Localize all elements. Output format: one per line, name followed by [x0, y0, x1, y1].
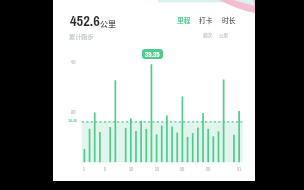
staticText: 1: [79, 166, 89, 173]
staticText: 452.6: [70, 11, 100, 31]
button[interactable]: 39.35: [142, 49, 163, 59]
staticText: 打卡: [199, 15, 213, 25]
staticText: 5: [100, 166, 110, 173]
staticText: 20: [177, 166, 187, 173]
staticText: 20: [71, 109, 76, 116]
staticText: 15: [152, 166, 162, 173]
staticText: 里程: [177, 15, 191, 25]
staticText: 40: [71, 59, 76, 66]
button[interactable]: 里程: [177, 15, 191, 25]
button[interactable]: 打卡: [199, 15, 213, 25]
staticText: 累计跑步: [69, 32, 94, 41]
staticText: 趟次: [203, 32, 213, 39]
staticText: 39.35: [145, 50, 160, 59]
staticText: 时长: [222, 15, 236, 25]
staticText: 31: [234, 166, 244, 173]
button[interactable]: 时长: [222, 15, 236, 25]
staticText: 16.16: [68, 118, 77, 124]
staticText: 公里: [100, 18, 116, 30]
staticText: 公里: [219, 32, 229, 39]
staticText: 10: [126, 166, 136, 173]
staticText: 25: [203, 166, 213, 173]
